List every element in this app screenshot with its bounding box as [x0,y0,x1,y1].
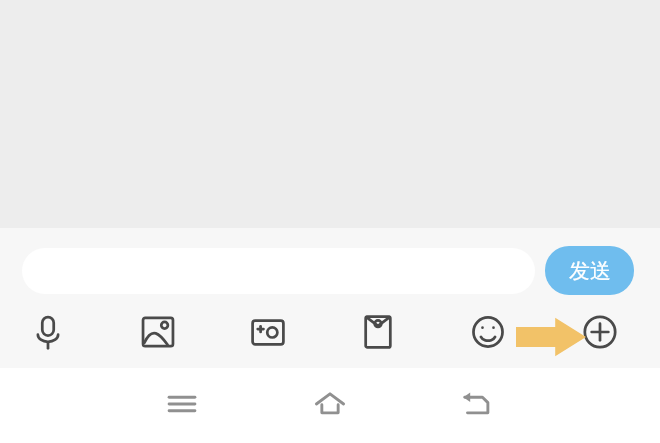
button[interactable]: Back [451,378,503,430]
button[interactable]: Photos [130,304,186,360]
button[interactable]: 发送 [545,246,634,295]
button[interactable]: Home [304,378,356,430]
staticText: 发送 [569,258,611,284]
button[interactable]: Menu [156,378,208,430]
button[interactable]: Voice message [20,304,76,360]
button[interactable]: More [572,304,628,360]
button[interactable]: Camera [240,304,296,360]
button[interactable]: Emoji [460,304,516,360]
button[interactable]: Red packet [350,304,406,360]
